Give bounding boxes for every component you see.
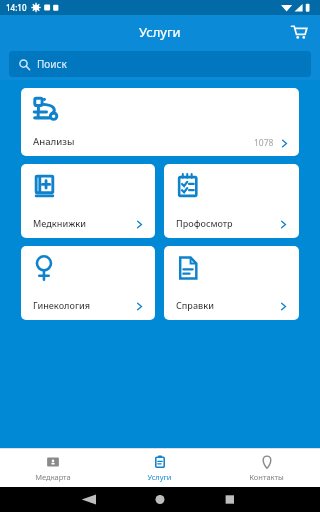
- button[interactable]: Медкнижки: [21, 164, 155, 238]
- staticText: 14:10: [6, 2, 27, 13]
- staticText: Анализы: [33, 135, 75, 148]
- button[interactable]: Гинекология: [21, 246, 155, 320]
- button[interactable]: Справки: [164, 246, 299, 320]
- button[interactable]: Услуги: [106, 449, 213, 487]
- staticText: Гинекология: [33, 299, 90, 311]
- button[interactable]: Медкарта: [0, 449, 106, 487]
- staticText: Услуги: [147, 472, 172, 482]
- staticText: 1078: [254, 137, 274, 149]
- button[interactable]: Cart: [286, 19, 312, 45]
- button[interactable]: Поиск: [9, 51, 311, 77]
- staticText: Медкнижки: [33, 217, 86, 229]
- button[interactable]: Контакты: [213, 449, 320, 487]
- staticText: Услуги: [139, 23, 181, 41]
- staticText: Поиск: [37, 57, 67, 71]
- staticText: Контакты: [249, 472, 284, 482]
- button[interactable]: Анализы: [21, 88, 299, 156]
- staticText: Справки: [176, 299, 214, 311]
- staticText: Профосмотр: [176, 217, 233, 229]
- staticText: Медкарта: [35, 472, 71, 482]
- button[interactable]: Профосмотр: [164, 164, 299, 238]
